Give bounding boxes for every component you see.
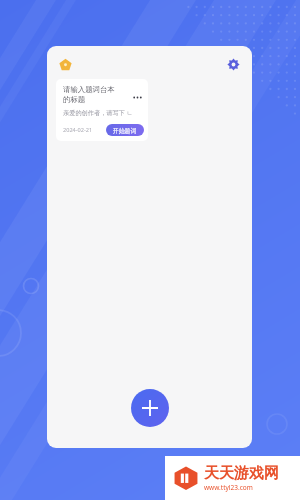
staticText: 请输入题词台本 的标题 xyxy=(63,85,131,105)
button[interactable]: More options xyxy=(131,91,144,104)
button[interactable]: VIP xyxy=(52,51,78,77)
button[interactable]: 请输入题词台本 的标题 xyxy=(56,79,148,141)
staticText: 天天游戏网 xyxy=(204,464,279,483)
button[interactable]: Settings xyxy=(221,52,245,76)
staticText: 开始题词 xyxy=(113,127,137,134)
staticText: 2024-02-21 xyxy=(63,126,93,134)
staticText: 亲爱的创作者，请写下 ㄴ xyxy=(63,108,133,116)
staticText: www.ttyl23.com xyxy=(204,483,253,492)
button[interactable]: Add xyxy=(131,389,169,427)
button[interactable]: 开始题词 xyxy=(106,124,144,136)
